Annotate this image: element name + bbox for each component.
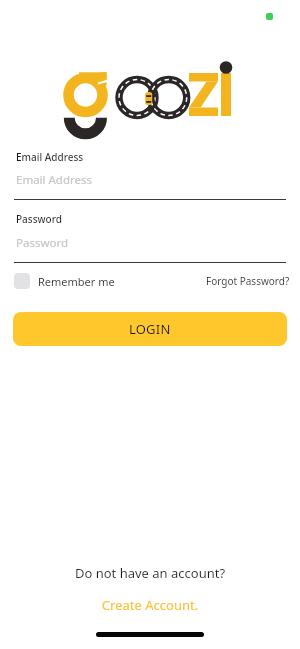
staticText: Do not have an account?	[0, 564, 300, 582]
button[interactable]: Forgot Password?	[206, 274, 290, 288]
staticText: Password	[16, 212, 62, 226]
staticText: LOGIN	[129, 320, 171, 338]
staticText: Email Address	[16, 150, 84, 164]
button[interactable]: Remember me	[14, 273, 115, 289]
staticText: Remember me	[38, 274, 115, 289]
staticText: Email Address	[16, 172, 93, 188]
button[interactable]: Create Account.	[0, 596, 300, 614]
staticText: Password	[16, 235, 69, 251]
button[interactable]: LOGIN	[13, 312, 287, 346]
